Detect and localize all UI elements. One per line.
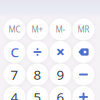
button[interactable]: C xyxy=(3,41,25,63)
button[interactable]: 9 xyxy=(49,63,71,85)
staticText: 6 xyxy=(56,88,64,100)
button[interactable]: Plus xyxy=(72,86,94,100)
button[interactable]: 6 xyxy=(49,86,71,100)
button[interactable]: Divide xyxy=(26,41,48,63)
staticText: M+ xyxy=(31,24,43,35)
staticText: 9 xyxy=(56,66,64,83)
staticText: 7 xyxy=(10,66,18,83)
button[interactable]: M+ xyxy=(26,18,48,40)
staticText: MR xyxy=(77,24,89,35)
button[interactable]: Delete xyxy=(72,41,94,63)
button[interactable]: MC xyxy=(3,18,25,40)
button[interactable]: MR xyxy=(72,18,94,40)
button[interactable]: 8 xyxy=(26,63,48,85)
staticText: 8 xyxy=(33,66,41,83)
button[interactable]: 5 xyxy=(26,86,48,100)
button[interactable]: 7 xyxy=(3,63,25,85)
staticText: 5 xyxy=(33,88,41,100)
button[interactable]: Multiply xyxy=(49,41,71,63)
button[interactable]: M- xyxy=(49,18,71,40)
staticText: MC xyxy=(8,24,20,35)
staticText: C xyxy=(10,43,18,61)
staticText: M- xyxy=(55,24,65,35)
staticText: 4 xyxy=(10,88,18,100)
button[interactable]: Minus xyxy=(72,63,94,85)
button[interactable]: 4 xyxy=(3,86,25,100)
